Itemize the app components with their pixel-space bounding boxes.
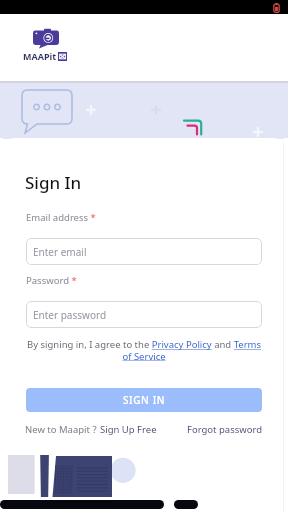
staticText: Email address * bbox=[26, 211, 96, 224]
staticText: Sign In bbox=[25, 171, 82, 194]
staticText: Sign Up Free bbox=[100, 423, 157, 436]
button[interactable]: Forgot password bbox=[187, 423, 263, 436]
staticText: By signing in, I agree to the Privacy Po… bbox=[26, 338, 262, 362]
staticText: MAAPit bbox=[23, 50, 57, 62]
staticText: New to Maapit ? bbox=[25, 423, 100, 436]
staticText: SIGN IN bbox=[123, 393, 166, 407]
button[interactable]: Enter password bbox=[26, 301, 262, 328]
button[interactable]: Enter email bbox=[26, 238, 262, 265]
button[interactable]: SIGN IN bbox=[26, 388, 262, 412]
staticText: Enter password bbox=[33, 308, 107, 322]
button[interactable]: New to Maapit ? bbox=[25, 423, 157, 436]
staticText: Enter email bbox=[33, 245, 87, 259]
staticText: Password * bbox=[26, 274, 77, 287]
